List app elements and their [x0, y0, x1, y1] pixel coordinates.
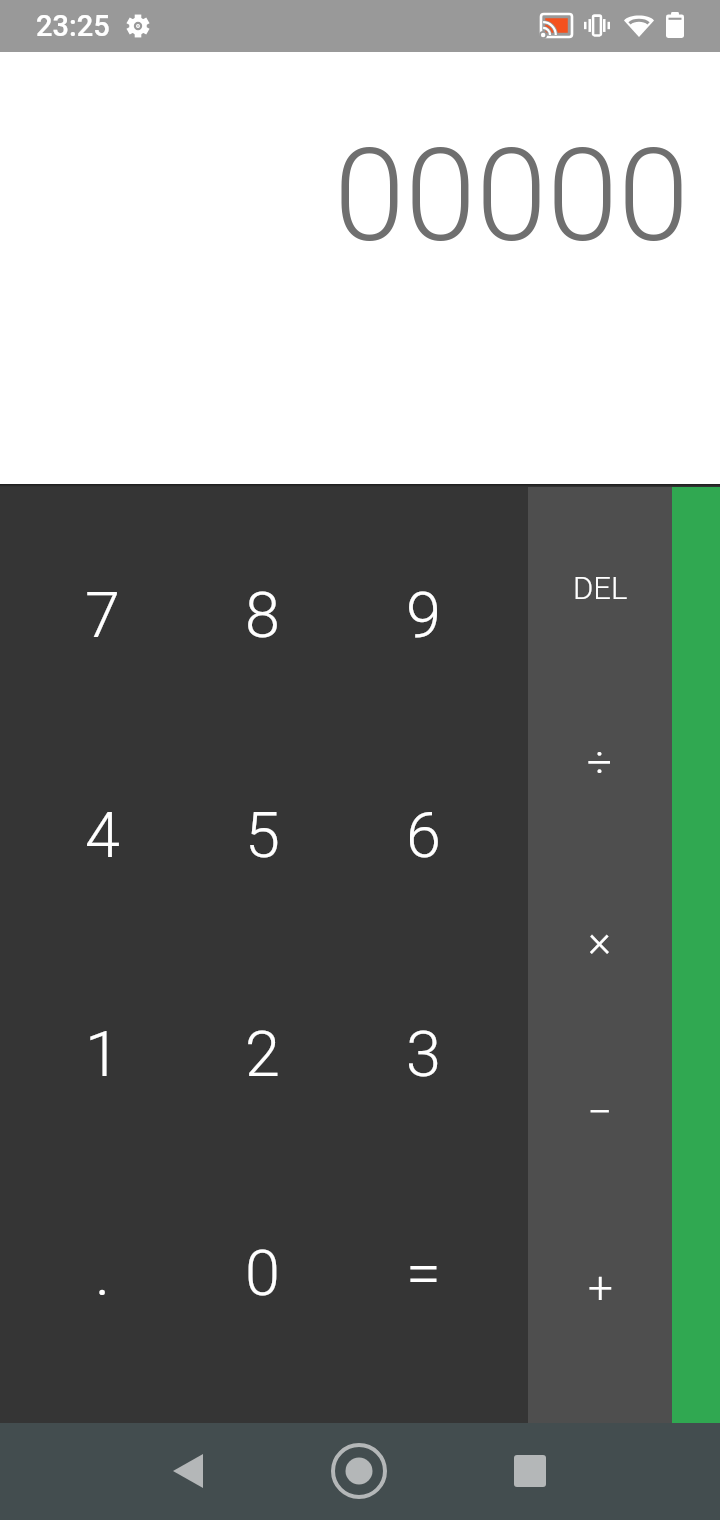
button[interactable]: Home: [311, 1423, 407, 1519]
button[interactable]: Recent apps: [482, 1423, 578, 1519]
button[interactable]: +: [528, 1200, 672, 1375]
button[interactable]: 2: [182, 945, 343, 1164]
staticText: 1: [85, 1018, 120, 1092]
staticText: 4: [85, 799, 120, 873]
button[interactable]: Back: [140, 1423, 236, 1519]
staticText: 5: [245, 799, 280, 873]
staticText: 6: [406, 799, 441, 873]
button[interactable]: Equals: [672, 484, 720, 1423]
button[interactable]: ×: [528, 853, 672, 1028]
staticText: −: [587, 1086, 613, 1138]
staticText: .: [95, 1237, 111, 1311]
button[interactable]: 3: [343, 945, 504, 1164]
staticText: 2: [245, 1018, 280, 1092]
button[interactable]: ÷: [528, 675, 672, 850]
staticText: ÷: [587, 737, 613, 789]
staticText: DEL: [573, 570, 628, 606]
other: Settings: [127, 15, 149, 37]
staticText: 0: [245, 1237, 280, 1311]
button[interactable]: 1: [22, 945, 183, 1164]
staticText: 3: [406, 1018, 441, 1092]
staticText: ×: [588, 915, 612, 967]
staticText: 00000: [334, 121, 689, 271]
staticText: 23:25: [36, 9, 110, 43]
button[interactable]: 7: [22, 506, 183, 725]
button[interactable]: 8: [182, 506, 343, 725]
staticText: +: [588, 1262, 613, 1314]
staticText: =: [406, 1237, 441, 1311]
button[interactable]: DEL: [528, 500, 672, 675]
button[interactable]: Display: [0, 0, 720, 484]
button[interactable]: .: [22, 1164, 183, 1383]
button[interactable]: 9: [343, 506, 504, 725]
staticText: 7: [85, 579, 120, 653]
button[interactable]: −: [528, 1024, 672, 1199]
button[interactable]: 0: [182, 1164, 343, 1383]
staticText: 9: [406, 579, 441, 653]
staticText: 8: [245, 579, 280, 653]
button[interactable]: 5: [182, 726, 343, 945]
button[interactable]: =: [343, 1164, 504, 1383]
button[interactable]: 4: [22, 726, 183, 945]
button[interactable]: 6: [343, 726, 504, 945]
